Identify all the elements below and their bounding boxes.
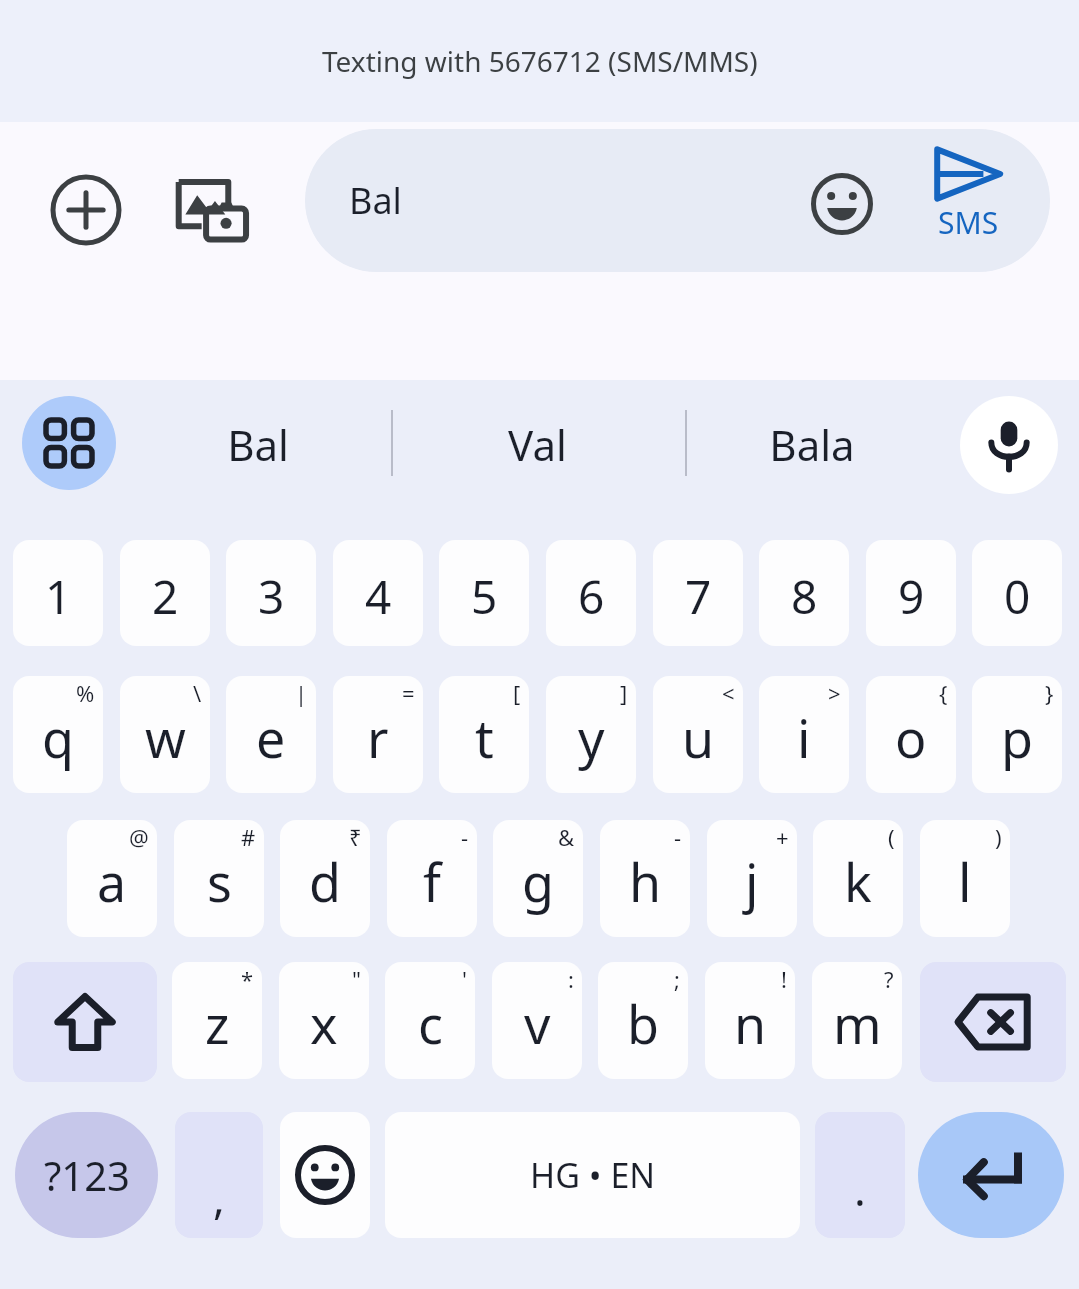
- button[interactable]: q: [13, 676, 103, 793]
- button[interactable]: Send SMS: [912, 146, 1024, 258]
- staticText: ': [462, 964, 467, 994]
- button[interactable]: 1: [13, 540, 103, 646]
- button[interactable]: 0: [972, 540, 1062, 646]
- staticText: 1: [45, 565, 72, 628]
- staticText: v: [524, 988, 551, 1059]
- staticText: a: [97, 846, 127, 917]
- staticText: 8: [791, 565, 818, 628]
- button[interactable]: b: [598, 962, 688, 1079]
- button[interactable]: h: [600, 820, 690, 937]
- button[interactable]: Backspace: [920, 962, 1066, 1082]
- button[interactable]: Bal: [148, 380, 368, 508]
- button[interactable]: ?123: [15, 1112, 158, 1238]
- staticText: !: [781, 964, 787, 994]
- button[interactable]: Keyboard modes: [22, 396, 116, 490]
- button[interactable]: Add attachment: [42, 166, 130, 254]
- button[interactable]: Emoji: [800, 162, 884, 246]
- staticText: ;: [674, 964, 680, 994]
- staticText: {: [939, 678, 948, 708]
- staticText: f: [423, 846, 441, 917]
- button[interactable]: Voice input: [960, 396, 1058, 494]
- button[interactable]: 7: [653, 540, 743, 646]
- staticText: (: [888, 822, 895, 852]
- staticText: &: [558, 822, 575, 852]
- staticText: .: [854, 1159, 866, 1219]
- staticText: =: [402, 678, 415, 708]
- staticText: ,: [213, 1167, 225, 1227]
- button[interactable]: m: [812, 962, 902, 1079]
- button[interactable]: g: [493, 820, 583, 937]
- button[interactable]: 3: [226, 540, 316, 646]
- staticText: d: [309, 846, 341, 917]
- button[interactable]: Val: [427, 380, 647, 508]
- staticText: k: [844, 846, 872, 917]
- staticText: z: [205, 988, 230, 1059]
- staticText: i: [797, 702, 811, 773]
- button[interactable]: z: [172, 962, 262, 1079]
- button[interactable]: o: [866, 676, 956, 793]
- staticText: *: [241, 964, 254, 994]
- staticText: b: [627, 988, 659, 1059]
- staticText: o: [895, 702, 927, 773]
- button[interactable]: p: [972, 676, 1062, 793]
- button[interactable]: 6: [546, 540, 636, 646]
- staticText: r: [367, 702, 389, 773]
- button[interactable]: y: [546, 676, 636, 793]
- button[interactable]: Emoji keyboard: [280, 1112, 370, 1238]
- staticText: u: [682, 702, 715, 773]
- staticText: >: [828, 678, 841, 708]
- staticText: Val: [508, 416, 567, 473]
- button[interactable]: n: [705, 962, 795, 1079]
- button[interactable]: Enter: [918, 1112, 1064, 1238]
- staticText: 2: [152, 565, 179, 628]
- button[interactable]: f: [387, 820, 477, 937]
- button[interactable]: x: [279, 962, 369, 1079]
- button[interactable]: Bal: [305, 129, 1050, 272]
- button[interactable]: 2: [120, 540, 210, 646]
- staticText: Bala: [769, 416, 855, 473]
- staticText: y: [578, 702, 605, 773]
- button[interactable]: t: [439, 676, 529, 793]
- button[interactable]: ,: [175, 1112, 263, 1238]
- button[interactable]: Shift: [13, 962, 157, 1082]
- button[interactable]: 8: [759, 540, 849, 646]
- staticText: l: [958, 846, 972, 917]
- button[interactable]: i: [759, 676, 849, 793]
- button[interactable]: .: [815, 1112, 905, 1238]
- button[interactable]: w: [120, 676, 210, 793]
- button[interactable]: u: [653, 676, 743, 793]
- button[interactable]: s: [174, 820, 264, 937]
- staticText: g: [522, 846, 554, 917]
- staticText: 9: [898, 565, 925, 628]
- button[interactable]: l: [920, 820, 1010, 937]
- staticText: ₹: [349, 822, 362, 852]
- button[interactable]: HG • EN: [385, 1112, 800, 1238]
- button[interactable]: Bala: [702, 380, 922, 508]
- button[interactable]: e: [226, 676, 316, 793]
- button[interactable]: r: [333, 676, 423, 793]
- button[interactable]: c: [385, 962, 475, 1079]
- button[interactable]: k: [813, 820, 903, 937]
- button[interactable]: v: [492, 962, 582, 1079]
- button[interactable]: 5: [439, 540, 529, 646]
- button[interactable]: Photos and camera: [168, 166, 256, 254]
- staticText: ?: [884, 964, 894, 994]
- staticText: [: [513, 678, 521, 708]
- button[interactable]: j: [707, 820, 797, 937]
- staticText: -: [674, 822, 682, 852]
- staticText: |: [295, 678, 308, 708]
- button[interactable]: a: [67, 820, 157, 937]
- staticText: ]: [620, 678, 628, 708]
- staticText: w: [145, 702, 186, 773]
- staticText: SMS: [938, 202, 999, 243]
- button[interactable]: 4: [333, 540, 423, 646]
- button[interactable]: d: [280, 820, 370, 937]
- staticText: x: [310, 988, 338, 1059]
- staticText: 5: [471, 565, 498, 628]
- button[interactable]: 9: [866, 540, 956, 646]
- staticText: \: [193, 678, 202, 708]
- staticText: 4: [365, 565, 392, 628]
- staticText: Texting with 5676712 (SMS/MMS): [322, 42, 758, 80]
- staticText: p: [1001, 702, 1033, 773]
- staticText: :: [568, 964, 574, 994]
